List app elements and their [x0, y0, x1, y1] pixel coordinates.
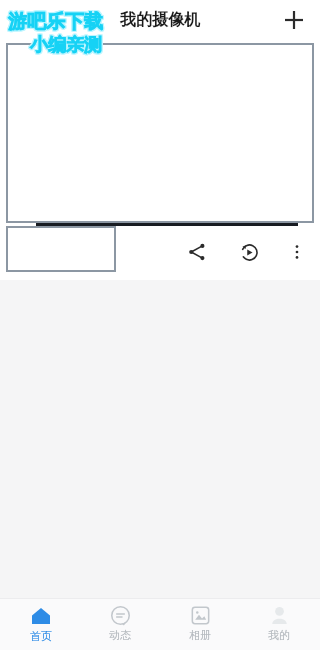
staticText: 我的摄像机	[120, 10, 200, 30]
button[interactable]: Recent capture thumbnail	[6, 226, 116, 272]
staticText: 小编亲测	[31, 33, 103, 56]
staticText: 游吧乐下载	[9, 11, 104, 35]
staticText: 小编亲测	[29, 33, 101, 56]
staticText: 小编亲测	[30, 33, 102, 56]
button[interactable]: Playback history	[232, 235, 266, 269]
staticText: 我的	[268, 628, 290, 642]
staticText: 游吧乐下载	[9, 9, 104, 33]
button[interactable]: 相册	[161, 598, 239, 650]
button[interactable]: 动态	[81, 598, 159, 650]
staticText: 游吧乐下载	[8, 9, 103, 33]
staticText: 小编亲测	[31, 34, 103, 57]
staticText: 小编亲测	[30, 34, 102, 57]
button[interactable]: Camera live preview	[6, 43, 314, 223]
staticText: 游吧乐下载	[7, 9, 102, 33]
button[interactable]: 我的	[240, 598, 318, 650]
staticText: 动态	[109, 628, 131, 642]
button[interactable]: Add camera	[276, 2, 312, 38]
staticText: 游吧乐下载	[7, 10, 102, 34]
button[interactable]: More options	[280, 235, 314, 269]
staticText: 小编亲测	[30, 35, 102, 58]
button[interactable]: Share	[180, 235, 214, 269]
staticText: 首页	[30, 629, 52, 643]
staticText: 游吧乐下载	[9, 10, 104, 34]
staticText: 游吧乐下载	[8, 10, 103, 34]
staticText: 相册	[189, 628, 211, 642]
staticText: 游吧乐下载	[7, 11, 102, 35]
staticText: 小编亲测	[29, 35, 101, 58]
staticText: 小编亲测	[31, 35, 103, 58]
staticText: 游吧乐下载	[8, 11, 103, 35]
staticText: 小编亲测	[29, 34, 101, 57]
button[interactable]: 首页	[2, 598, 80, 650]
